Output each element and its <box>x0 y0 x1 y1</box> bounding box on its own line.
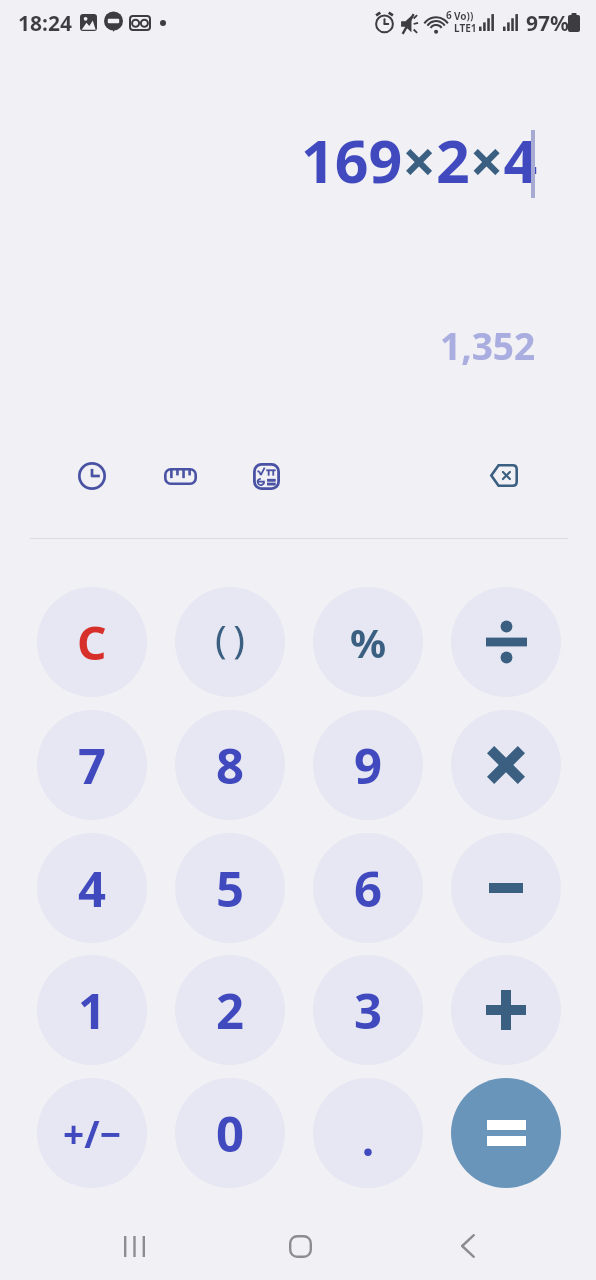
button[interactable]: 9 <box>313 710 423 820</box>
staticText: 6 <box>354 855 383 922</box>
button[interactable]: Scientific calculator <box>244 454 288 498</box>
button[interactable] <box>451 833 561 943</box>
button[interactable]: Backspace <box>481 453 525 497</box>
button[interactable] <box>451 955 561 1065</box>
button[interactable]: Back <box>443 1221 493 1271</box>
button[interactable]: 1 <box>37 955 147 1065</box>
button[interactable]: % <box>313 587 423 697</box>
button[interactable] <box>451 587 561 697</box>
staticText: 6 <box>446 8 452 22</box>
staticText: 1 <box>78 977 107 1044</box>
staticText: LTE1 <box>454 21 477 35</box>
staticText: 3 <box>354 977 383 1044</box>
staticText: 97% <box>526 9 569 38</box>
button[interactable]: 6 <box>313 833 423 943</box>
staticText: +/− <box>63 1108 122 1158</box>
staticText: 5 <box>216 855 245 922</box>
staticText: 4 <box>78 855 107 922</box>
button[interactable]: 5 <box>175 833 285 943</box>
button[interactable] <box>451 710 561 820</box>
button[interactable]: 2 <box>175 955 285 1065</box>
button[interactable]: +/− <box>37 1078 147 1188</box>
staticText: 8 <box>216 732 245 799</box>
staticText: 7 <box>78 732 107 799</box>
staticText: 18:24 <box>18 9 72 38</box>
staticText: C <box>77 611 107 674</box>
staticText: ( ) <box>215 611 245 664</box>
staticText: Vo)) <box>454 9 474 23</box>
staticText: 2 <box>216 977 245 1044</box>
button[interactable]: 8 <box>175 710 285 820</box>
button[interactable]: Home <box>275 1221 325 1271</box>
button[interactable]: ( ) <box>175 587 285 697</box>
staticText: 0 <box>216 1100 245 1167</box>
button[interactable]: 3 <box>313 955 423 1065</box>
button[interactable] <box>451 1078 561 1188</box>
staticText: 9 <box>354 732 383 799</box>
staticText: 169×2×4 <box>301 120 538 200</box>
button[interactable]: 0 <box>175 1078 285 1188</box>
staticText: 1,352 <box>440 320 536 370</box>
button[interactable]: Unit converter <box>158 454 202 498</box>
button[interactable]: 4 <box>37 833 147 943</box>
button[interactable]: C <box>37 587 147 697</box>
button[interactable]: Recents <box>109 1221 159 1271</box>
button[interactable]: History <box>70 454 114 498</box>
button[interactable] <box>313 1078 423 1188</box>
button[interactable]: 7 <box>37 710 147 820</box>
staticText: % <box>350 615 387 669</box>
